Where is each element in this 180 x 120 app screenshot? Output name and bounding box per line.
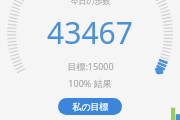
staticText: 目標:15000 bbox=[67, 60, 114, 72]
staticText: 43467 bbox=[47, 12, 133, 53]
staticText: 私の目標 bbox=[72, 101, 109, 112]
button[interactable]: 私の目標 bbox=[58, 98, 122, 115]
staticText: 100% 結果 bbox=[68, 77, 112, 89]
button[interactable]: Activity chart bbox=[170, 107, 180, 120]
staticText: 今日の歩数 bbox=[70, 0, 111, 6]
